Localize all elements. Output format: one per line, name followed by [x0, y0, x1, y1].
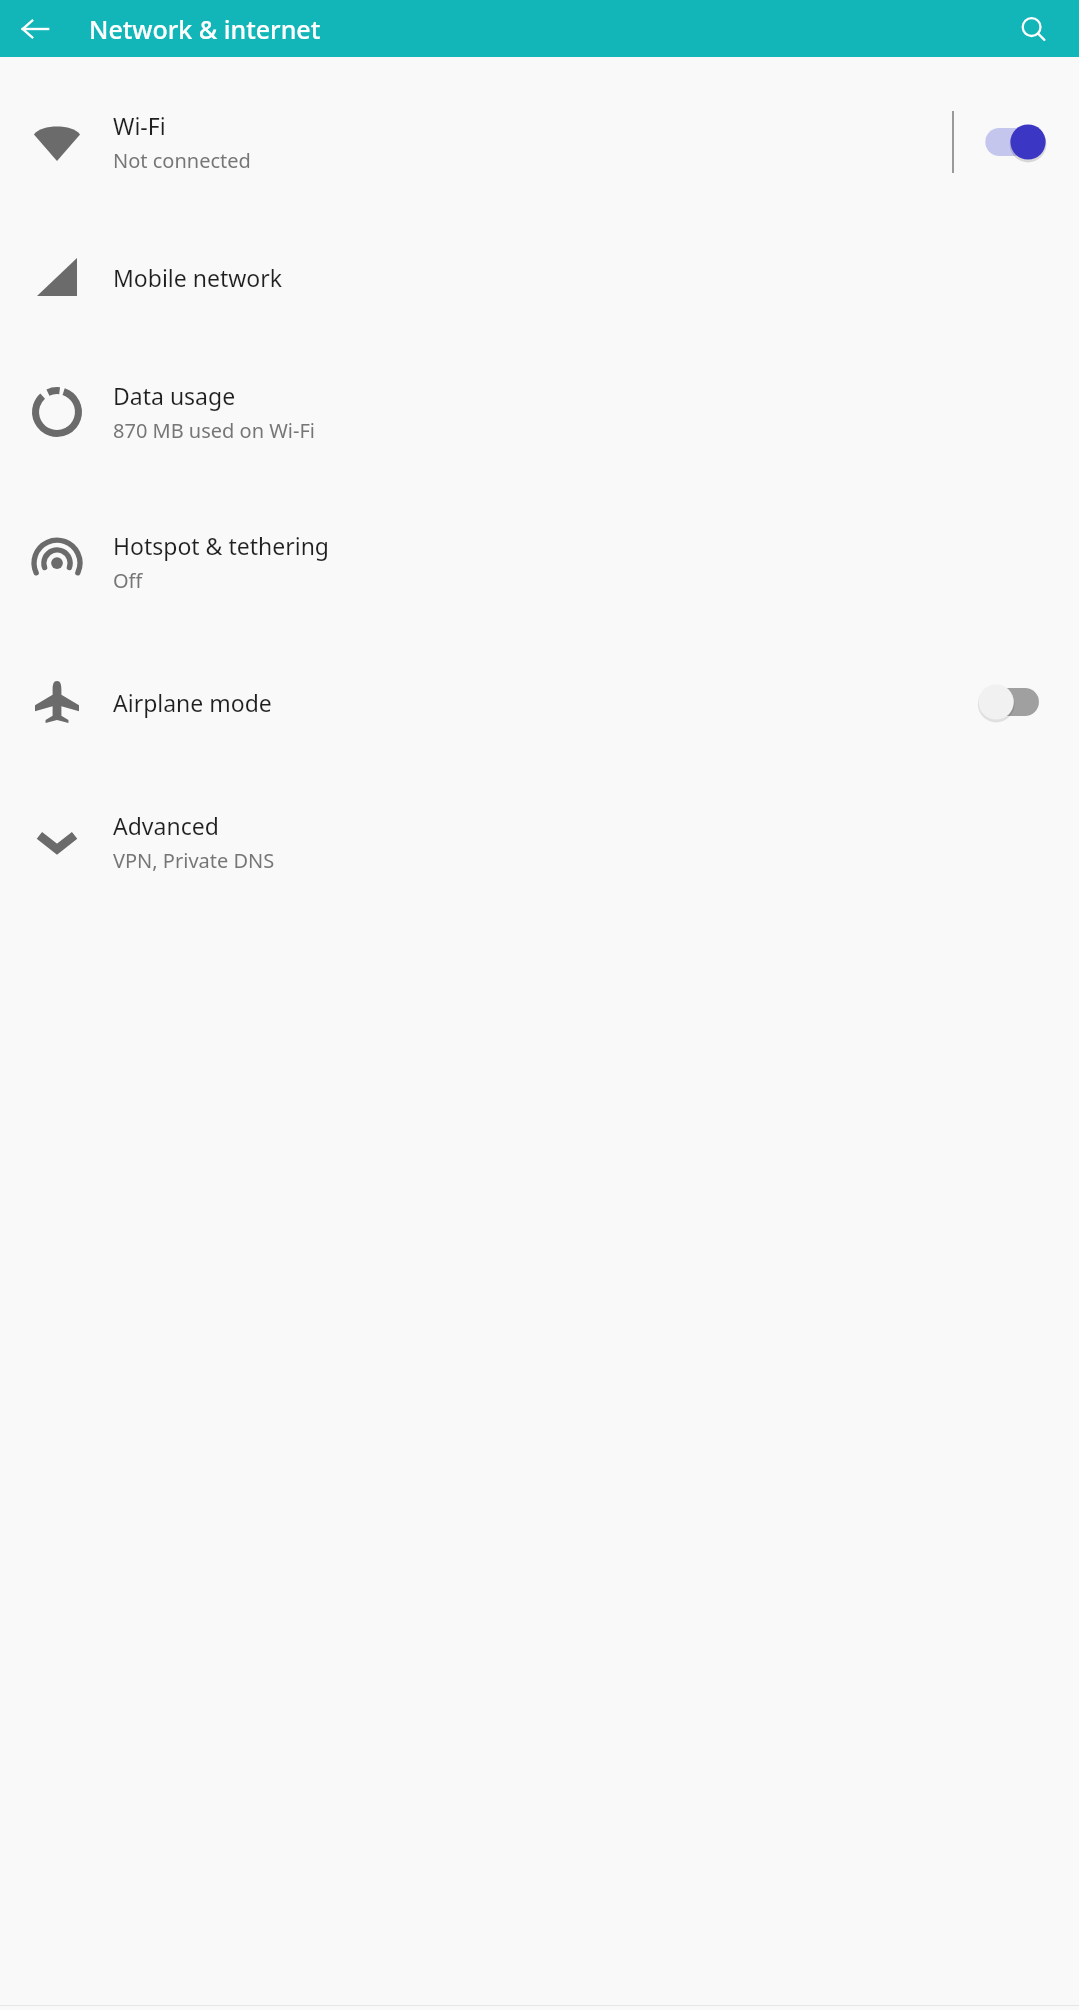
- staticText: Mobile network: [113, 262, 283, 293]
- button[interactable]: Advanced: [0, 767, 1079, 917]
- staticText: Hotspot & tethering: [113, 530, 329, 561]
- button[interactable]: Airplane mode: [0, 637, 1079, 767]
- staticText: Off: [113, 567, 143, 594]
- staticText: Not connected: [113, 147, 251, 174]
- staticText: Wi-Fi: [113, 110, 166, 141]
- button[interactable]: Mobile network: [0, 217, 1079, 337]
- staticText: Network & internet: [89, 12, 321, 46]
- staticText: Advanced: [113, 810, 219, 841]
- button[interactable]: Back: [10, 4, 60, 54]
- button[interactable]: Hotspot & tethering: [0, 487, 1079, 637]
- button[interactable]: Data usage: [0, 337, 1079, 487]
- staticText: 870 MB used on Wi-Fi: [113, 417, 315, 444]
- staticText: VPN, Private DNS: [113, 847, 275, 874]
- staticText: Data usage: [113, 380, 236, 411]
- button[interactable]: Search: [1007, 3, 1059, 55]
- button[interactable]: Wi-Fi: [0, 67, 952, 217]
- button[interactable]: Wi-Fi toggle: [954, 67, 1079, 217]
- staticText: Airplane mode: [113, 687, 272, 718]
